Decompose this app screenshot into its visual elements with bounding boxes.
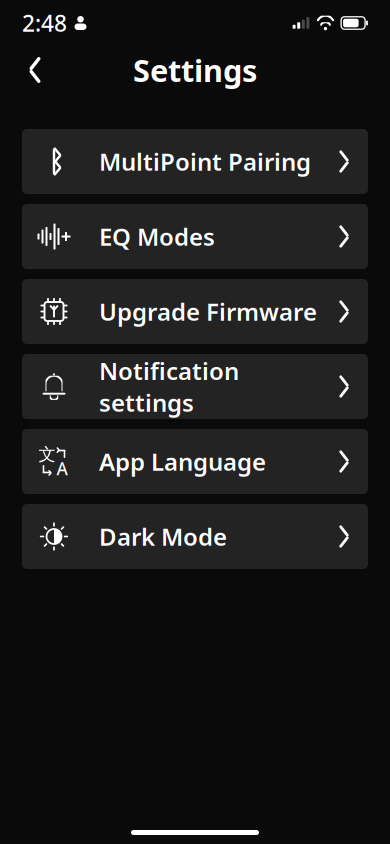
staticText: Dark Mode [99, 521, 227, 552]
staticText: 2:48 [22, 8, 67, 38]
button[interactable]: Back [8, 46, 62, 94]
staticText: MultiPoint Pairing [99, 146, 311, 177]
staticText: A [56, 457, 67, 480]
staticText: App Language [99, 446, 266, 477]
staticText: 文 [38, 444, 55, 465]
staticText: Settings [133, 50, 257, 90]
staticText: EQ Modes [99, 221, 215, 252]
button[interactable]: MultiPoint Pairing [22, 129, 368, 194]
staticText: Notification settings [99, 355, 239, 418]
button[interactable]: Notification settings [22, 354, 368, 419]
button[interactable]: 文 [22, 429, 368, 494]
button[interactable]: EQ Modes [22, 204, 368, 269]
staticText: Upgrade Firmware [99, 296, 317, 327]
button[interactable]: Upgrade Firmware [22, 279, 368, 344]
button[interactable]: Dark Mode [22, 504, 368, 569]
